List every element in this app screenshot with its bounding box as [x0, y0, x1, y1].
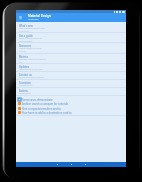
button[interactable]: Recents: [83, 162, 88, 167]
staticText: Actions: [19, 89, 28, 92]
staticText: Window sizes and tools to: [19, 58, 46, 61]
staticText: Guidelines: [28, 18, 39, 21]
staticText: updates: [19, 50, 26, 52]
staticText: reference guides: [19, 40, 33, 42]
button[interactable]: Some cases demonstrate: [16, 97, 126, 102]
staticText: 2 new items: [19, 30, 29, 32]
button[interactable]: Resources: [16, 43, 126, 54]
staticText: Read it now on web.io: [19, 37, 42, 40]
button[interactable]: Contact us: [16, 72, 126, 80]
staticText: Contact us: [19, 73, 32, 76]
staticText: Help rollout on all 2021: [19, 68, 43, 71]
button[interactable]: Shot a impacts transition and to: [16, 106, 126, 111]
staticText: Material Design: [28, 14, 51, 18]
staticText: Transition: [19, 81, 31, 84]
staticText: Archive search a compare for tutorials: [22, 102, 69, 106]
staticText: Take a look at what's new: [19, 27, 46, 30]
button[interactable]: Updates: [16, 64, 126, 72]
staticText: Metrics: [19, 55, 28, 58]
button[interactable]: Archive search a compare for tutorials: [16, 101, 126, 106]
button[interactable]: Your have to add to a destination card t…: [16, 110, 126, 115]
button[interactable]: Navigation menu: [16, 13, 25, 22]
staticText: Your have to add to a destination card t…: [22, 111, 72, 115]
staticText: What's new: [19, 24, 33, 27]
button[interactable]: Get a guide: [16, 33, 126, 43]
staticText: Reviewing all: [19, 84, 33, 87]
button[interactable]: Metrics: [16, 54, 126, 64]
staticText: Some cases demonstrate: [22, 98, 53, 102]
staticText: Going to support centre: [19, 76, 44, 79]
staticText: 2021: [19, 61, 23, 63]
staticText: Shot a impacts transition and to: [22, 107, 61, 111]
staticText: Downloads: [19, 92, 31, 95]
button[interactable]: What's new: [16, 23, 126, 33]
button[interactable]: Home: [69, 162, 74, 167]
staticText: Resources: [19, 44, 32, 47]
staticText: Get a guide: [19, 34, 33, 37]
button[interactable]: Back: [55, 162, 60, 167]
staticText: Updates: [19, 65, 29, 68]
button[interactable]: Actions: [16, 88, 126, 96]
button[interactable]: Transition: [16, 80, 126, 88]
staticText: Sticker sheets & Tools: [19, 47, 42, 50]
